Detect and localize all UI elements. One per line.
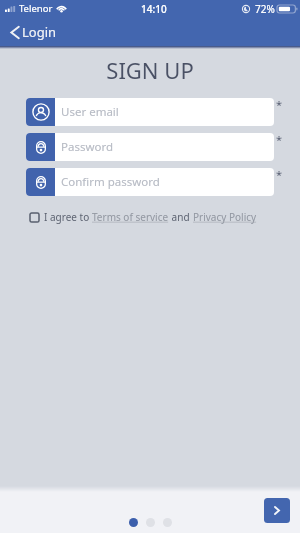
button[interactable]: Next (264, 498, 290, 523)
staticText: Telenor (19, 2, 53, 15)
staticText: * (276, 97, 283, 112)
staticText: and (169, 210, 193, 224)
staticText: * (276, 167, 283, 182)
staticText: Password (61, 139, 114, 155)
staticText: SIGN UP (0, 55, 300, 85)
staticText: 14:10 (141, 2, 167, 16)
staticText: User email (61, 104, 119, 120)
button[interactable]: Confirm password (26, 168, 274, 196)
button[interactable]: I agree to (30, 210, 257, 224)
staticText: * (276, 132, 283, 147)
staticText: I agree to (44, 210, 92, 224)
button[interactable]: User email (26, 98, 274, 126)
button[interactable]: Privacy Policy (193, 210, 257, 224)
staticText: Confirm password (61, 174, 160, 190)
button[interactable]: Password (26, 133, 274, 161)
button[interactable]: Login (8, 23, 59, 41)
button[interactable]: Terms of service (92, 210, 169, 224)
staticText: Login (22, 23, 57, 41)
staticText: 72% (255, 2, 275, 16)
